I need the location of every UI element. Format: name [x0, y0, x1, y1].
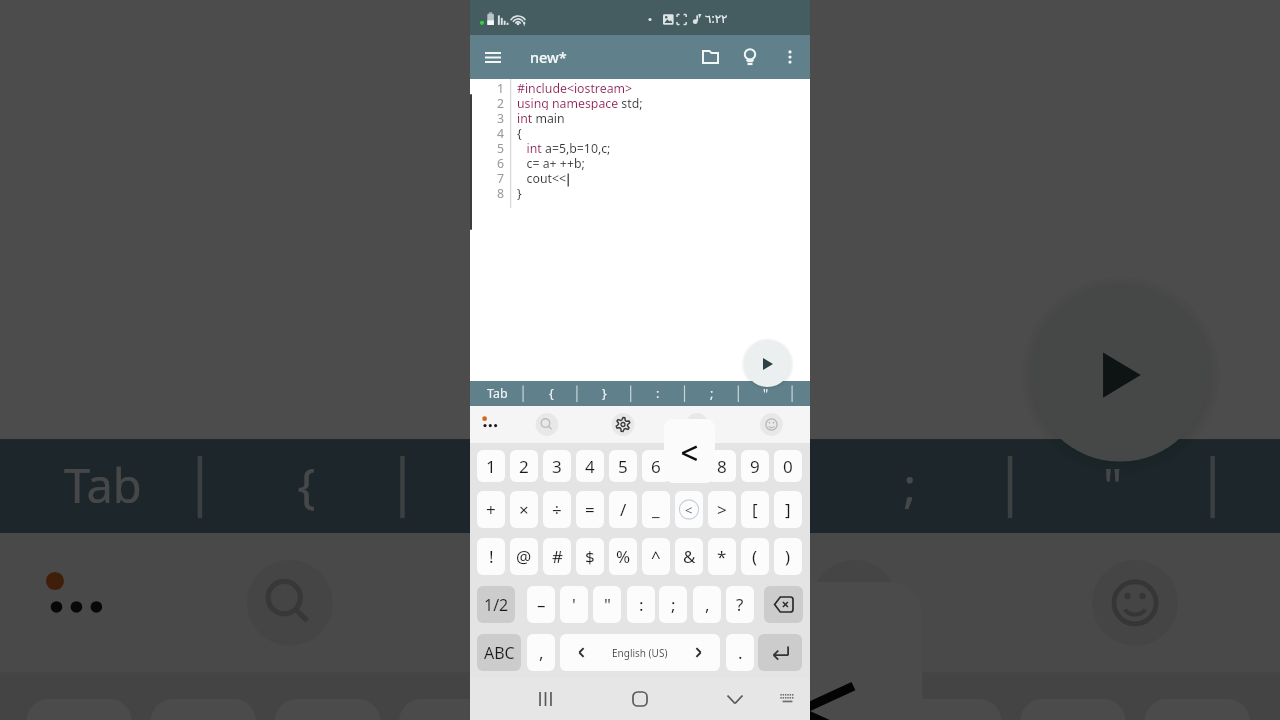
button[interactable]: Clipboard	[683, 411, 711, 439]
button[interactable]: ABC	[477, 634, 521, 671]
button[interactable]: ×	[510, 491, 538, 528]
button[interactable]: ;	[685, 381, 739, 406]
button[interactable]: }	[577, 381, 631, 406]
button[interactable]: English (US)	[560, 634, 720, 671]
button[interactable]: Backspace	[764, 586, 803, 623]
button[interactable]: Run	[744, 340, 791, 387]
button[interactable]: :	[627, 586, 655, 623]
button[interactable]: 7	[675, 450, 703, 482]
button[interactable]: }	[403, 439, 606, 533]
button[interactable]: _	[642, 491, 670, 528]
button[interactable]: '	[560, 586, 588, 623]
staticText: 3	[552, 455, 562, 478]
button[interactable]: Tab	[0, 439, 203, 533]
button[interactable]: Run	[1031, 285, 1208, 462]
button[interactable]: ]	[774, 491, 802, 528]
button[interactable]: @	[510, 538, 538, 575]
button[interactable]: 2	[510, 450, 538, 482]
button[interactable]: ^	[642, 538, 670, 575]
staticText: (	[752, 545, 758, 568]
button[interactable]: [	[741, 491, 769, 528]
button[interactable]: More options	[772, 39, 808, 75]
button[interactable]: ,	[527, 634, 555, 671]
button[interactable]: Emoji	[1084, 552, 1190, 657]
staticText: "	[604, 593, 611, 616]
button[interactable]: $	[576, 538, 604, 575]
button[interactable]: ?	[726, 586, 754, 623]
button[interactable]: Hide keyboard	[719, 683, 751, 715]
staticText: cout<<	[517, 170, 567, 185]
button[interactable]: .	[726, 634, 754, 671]
button[interactable]: {	[524, 381, 578, 406]
button[interactable]: Home	[624, 683, 656, 715]
button[interactable]: /	[609, 491, 637, 528]
staticText: ;	[671, 593, 676, 616]
button[interactable]: Recents	[529, 683, 561, 715]
button[interactable]: #	[543, 538, 571, 575]
staticText: [	[752, 498, 758, 521]
button[interactable]: *	[708, 538, 736, 575]
button[interactable]: –	[527, 586, 555, 623]
button[interactable]: 3	[543, 450, 571, 482]
staticText: {	[297, 454, 316, 518]
button[interactable]: ÷	[543, 491, 571, 528]
button[interactable]: 6	[642, 450, 670, 482]
button[interactable]: Settings	[523, 552, 629, 657]
button[interactable]: +	[477, 491, 505, 528]
button[interactable]: Open folder	[692, 39, 728, 75]
button[interactable]: =	[576, 491, 604, 528]
button[interactable]: >	[708, 491, 736, 528]
button[interactable]: "	[1013, 439, 1216, 533]
staticText: :	[700, 454, 715, 518]
staticText: ;	[903, 454, 919, 518]
button[interactable]: 1/2	[477, 586, 515, 623]
button[interactable]: Clipboard	[802, 552, 907, 657]
staticText: "	[763, 385, 769, 402]
button[interactable]: )	[774, 538, 802, 575]
button[interactable]: "	[593, 586, 621, 623]
button[interactable]: Search	[533, 411, 561, 439]
button[interactable]: 4	[576, 450, 604, 482]
button[interactable]: :	[606, 439, 809, 533]
button[interactable]: ,	[693, 586, 721, 623]
staticText: 1	[497, 80, 505, 95]
button[interactable]: Enter	[758, 634, 802, 671]
button[interactable]: &	[675, 538, 703, 575]
button[interactable]: ;	[659, 586, 687, 623]
button[interactable]: <	[675, 491, 703, 528]
button[interactable]: "	[739, 381, 793, 406]
button[interactable]: 5	[523, 699, 629, 720]
button[interactable]: !	[477, 538, 505, 575]
button[interactable]: ;	[809, 439, 1013, 533]
button[interactable]: Change keyboard	[771, 683, 803, 715]
button[interactable]: {	[203, 439, 407, 533]
button[interactable]: Emoji	[758, 411, 786, 439]
button[interactable]: 5	[609, 450, 637, 482]
button[interactable]: More options	[4, 552, 109, 657]
button[interactable]: 7	[772, 699, 877, 720]
button[interactable]: Settings	[609, 411, 637, 439]
button[interactable]: Search	[237, 552, 343, 657]
button[interactable]: :	[631, 381, 685, 406]
button[interactable]: (	[741, 538, 769, 575]
button[interactable]: Menu	[473, 37, 513, 77]
staticText: >	[717, 498, 727, 521]
button[interactable]: 1	[477, 450, 505, 482]
button[interactable]: Tab	[470, 381, 524, 406]
button[interactable]: Hint	[732, 39, 768, 75]
button[interactable]: 6	[647, 699, 753, 720]
button[interactable]: More options	[471, 411, 499, 439]
button[interactable]: 0	[774, 450, 802, 482]
button[interactable]: 4	[399, 699, 504, 720]
button[interactable]: 8	[708, 450, 736, 482]
button[interactable]: %	[609, 538, 637, 575]
button[interactable]: 9	[741, 450, 769, 482]
staticText: Tab	[487, 385, 508, 402]
